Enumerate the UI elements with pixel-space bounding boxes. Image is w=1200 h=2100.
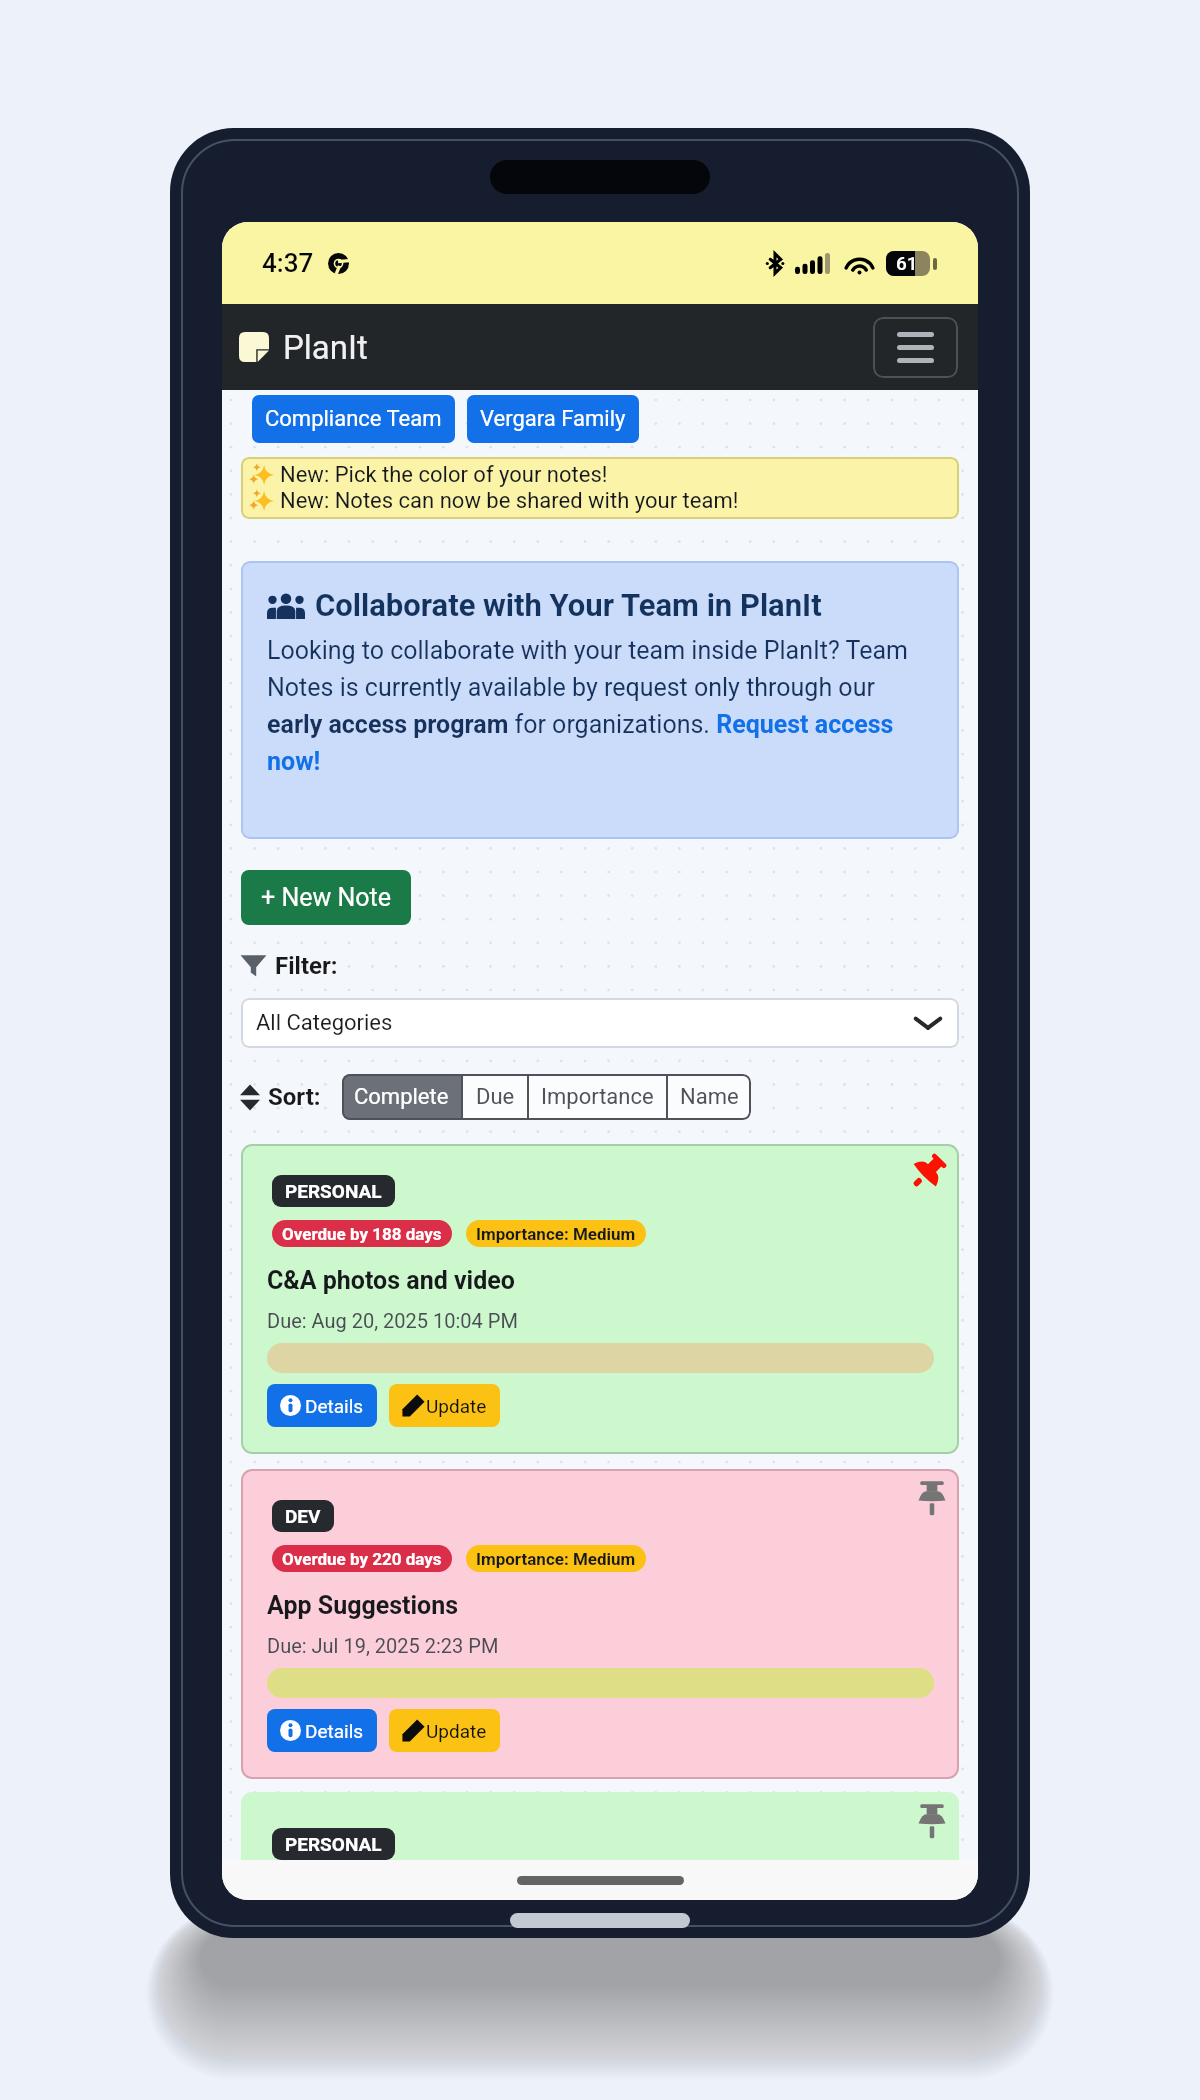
staticText: Filter:: [275, 952, 338, 978]
staticText: Due: Jul 19, 2025 2:23 PM: [267, 1634, 499, 1657]
staticText: App Suggestions: [267, 1591, 459, 1620]
staticText: New: Pick the color of your notes!: [280, 462, 608, 488]
staticText: Overdue by 188 days: [282, 1224, 442, 1244]
button[interactable]: Update: [389, 1384, 500, 1427]
staticText: Sort:: [268, 1083, 321, 1111]
staticText: Due: Aug 20, 2025 10:04 PM: [267, 1309, 518, 1332]
button[interactable]: Compliance Team: [252, 395, 455, 443]
button[interactable]: PERSONAL: [241, 1792, 959, 1860]
staticText: Name: [680, 1084, 739, 1110]
staticText: C&A photos and video: [267, 1266, 515, 1295]
staticText: Update: [426, 1395, 487, 1417]
staticText: Looking to collaborate with your team in…: [267, 636, 933, 776]
staticText: PlanIt: [283, 328, 368, 367]
staticText: 61: [896, 252, 918, 274]
staticText: PERSONAL: [285, 1180, 382, 1202]
staticText: Details: [305, 1720, 364, 1742]
staticText: New: Notes can now be shared with your t…: [280, 488, 739, 514]
staticText: Due: [476, 1084, 515, 1110]
button[interactable]: Details: [267, 1709, 377, 1752]
button[interactable]: Open menu: [873, 317, 958, 378]
staticText: Importance: Medium: [476, 1224, 636, 1244]
button[interactable]: Name: [668, 1074, 751, 1120]
staticText: Compliance Team: [265, 406, 442, 432]
staticText: 4:37: [262, 248, 314, 278]
staticText: DEV: [285, 1505, 321, 1527]
button[interactable]: Vergara Family: [467, 395, 639, 443]
button[interactable]: DEV: [241, 1469, 959, 1779]
staticText: Overdue by 220 days: [282, 1549, 442, 1569]
button[interactable]: Details: [267, 1384, 377, 1427]
button[interactable]: Due: [463, 1074, 527, 1120]
staticText: Update: [426, 1720, 487, 1742]
staticText: Vergara Family: [480, 406, 626, 432]
staticText: Importance: [541, 1084, 654, 1110]
button[interactable]: All Categories: [241, 998, 959, 1048]
button[interactable]: Complete: [342, 1074, 461, 1120]
staticText: Collaborate with Your Team in PlanIt: [315, 587, 822, 623]
button[interactable]: Update: [389, 1709, 500, 1752]
staticText: Complete: [354, 1084, 449, 1110]
staticText: Importance: Medium: [476, 1549, 636, 1569]
button[interactable]: Importance: [529, 1074, 666, 1120]
button[interactable]: PERSONAL: [241, 1144, 959, 1454]
staticText: All Categories: [256, 1010, 393, 1036]
staticText: PERSONAL: [285, 1833, 382, 1855]
staticText: Details: [305, 1395, 364, 1417]
staticText: + New Note: [261, 883, 391, 912]
button[interactable]: + New Note: [241, 870, 411, 925]
